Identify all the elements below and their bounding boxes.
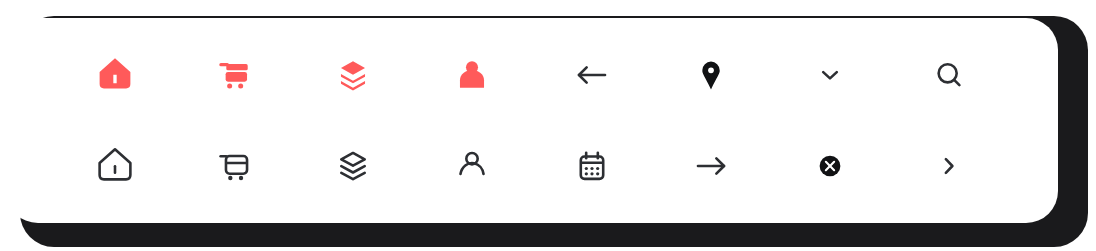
button[interactable]: Layers outline	[331, 144, 375, 188]
button[interactable]: Layers	[331, 53, 375, 97]
button[interactable]: Forward	[689, 144, 733, 188]
button[interactable]: Calendar	[570, 144, 614, 188]
button[interactable]: Location	[689, 53, 733, 97]
button[interactable]: Expand	[808, 53, 852, 97]
button[interactable]: Profile outline	[450, 144, 494, 188]
button[interactable]: Next	[927, 144, 971, 188]
button[interactable]: Cart outline	[212, 144, 256, 188]
button[interactable]: Home	[93, 53, 137, 97]
button[interactable]: Cart	[212, 53, 256, 97]
button[interactable]: Profile	[450, 53, 494, 97]
button[interactable]: Home outline	[93, 144, 137, 188]
button[interactable]: Search	[927, 53, 971, 97]
button[interactable]: Close	[808, 144, 852, 188]
button[interactable]: Back	[570, 53, 614, 97]
